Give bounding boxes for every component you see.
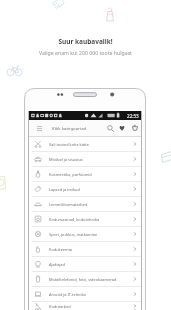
button[interactable]: Kodumasinad, kodutehnika: [29, 212, 141, 226]
staticText: Ajakirjad: [49, 262, 65, 267]
button[interactable]: Vali tooted kohe kätte: [29, 137, 141, 151]
button[interactable]: Kodukeemia: [29, 242, 141, 256]
staticText: Mobiiltelefonid, foto, videokaamerad: [49, 277, 117, 282]
staticText: Valige enam kui 200 000 toote hulgast: [39, 49, 132, 56]
button[interactable]: Kosmeetika, parfüümid: [29, 167, 141, 181]
button[interactable]: Sport, puhkus, matkamine: [29, 227, 141, 241]
staticText: Arvutid ja IT-tehnika: [49, 292, 86, 297]
button[interactable]: Arvutid ja IT-tehnika: [29, 287, 141, 301]
staticText: Vali tooted kohe kätte: [49, 142, 89, 147]
staticText: Mööbel ja sisustus: [49, 157, 83, 162]
staticText: Kõik kategooriad: [52, 125, 87, 131]
button[interactable]: Open navigation menu: [29, 120, 52, 136]
button[interactable]: Ajakirjad: [29, 257, 141, 271]
staticText: Sport, puhkus, matkamine: [49, 232, 98, 237]
staticText: Kodukeemia: [49, 247, 72, 252]
staticText: Suur kaubavalik!: [58, 37, 113, 46]
button[interactable]: Search: [104, 120, 116, 136]
button[interactable]: Lemmikloomatarbed: [29, 197, 141, 211]
staticText: Lapsed ja imikud: [49, 187, 80, 192]
staticText: Lemmikloomatarbed: [49, 202, 88, 207]
button[interactable]: Shopping cart: [128, 120, 141, 136]
staticText: Kodumasinad, kodutehnika: [49, 217, 100, 222]
button[interactable]: Mobiiltelefonid, foto, videokaamerad: [29, 272, 141, 286]
button[interactable]: Lapsed ja imikud: [29, 182, 141, 196]
staticText: Kosmeetika, parfüümid: [49, 172, 92, 177]
button[interactable]: Kodutarbed: [29, 302, 141, 310]
button[interactable]: Favourites: [116, 120, 128, 136]
staticText: Kodutarbed: [49, 304, 71, 309]
button[interactable]: Mööbel ja sisustus: [29, 152, 141, 166]
staticText: 22:53: [127, 113, 139, 119]
